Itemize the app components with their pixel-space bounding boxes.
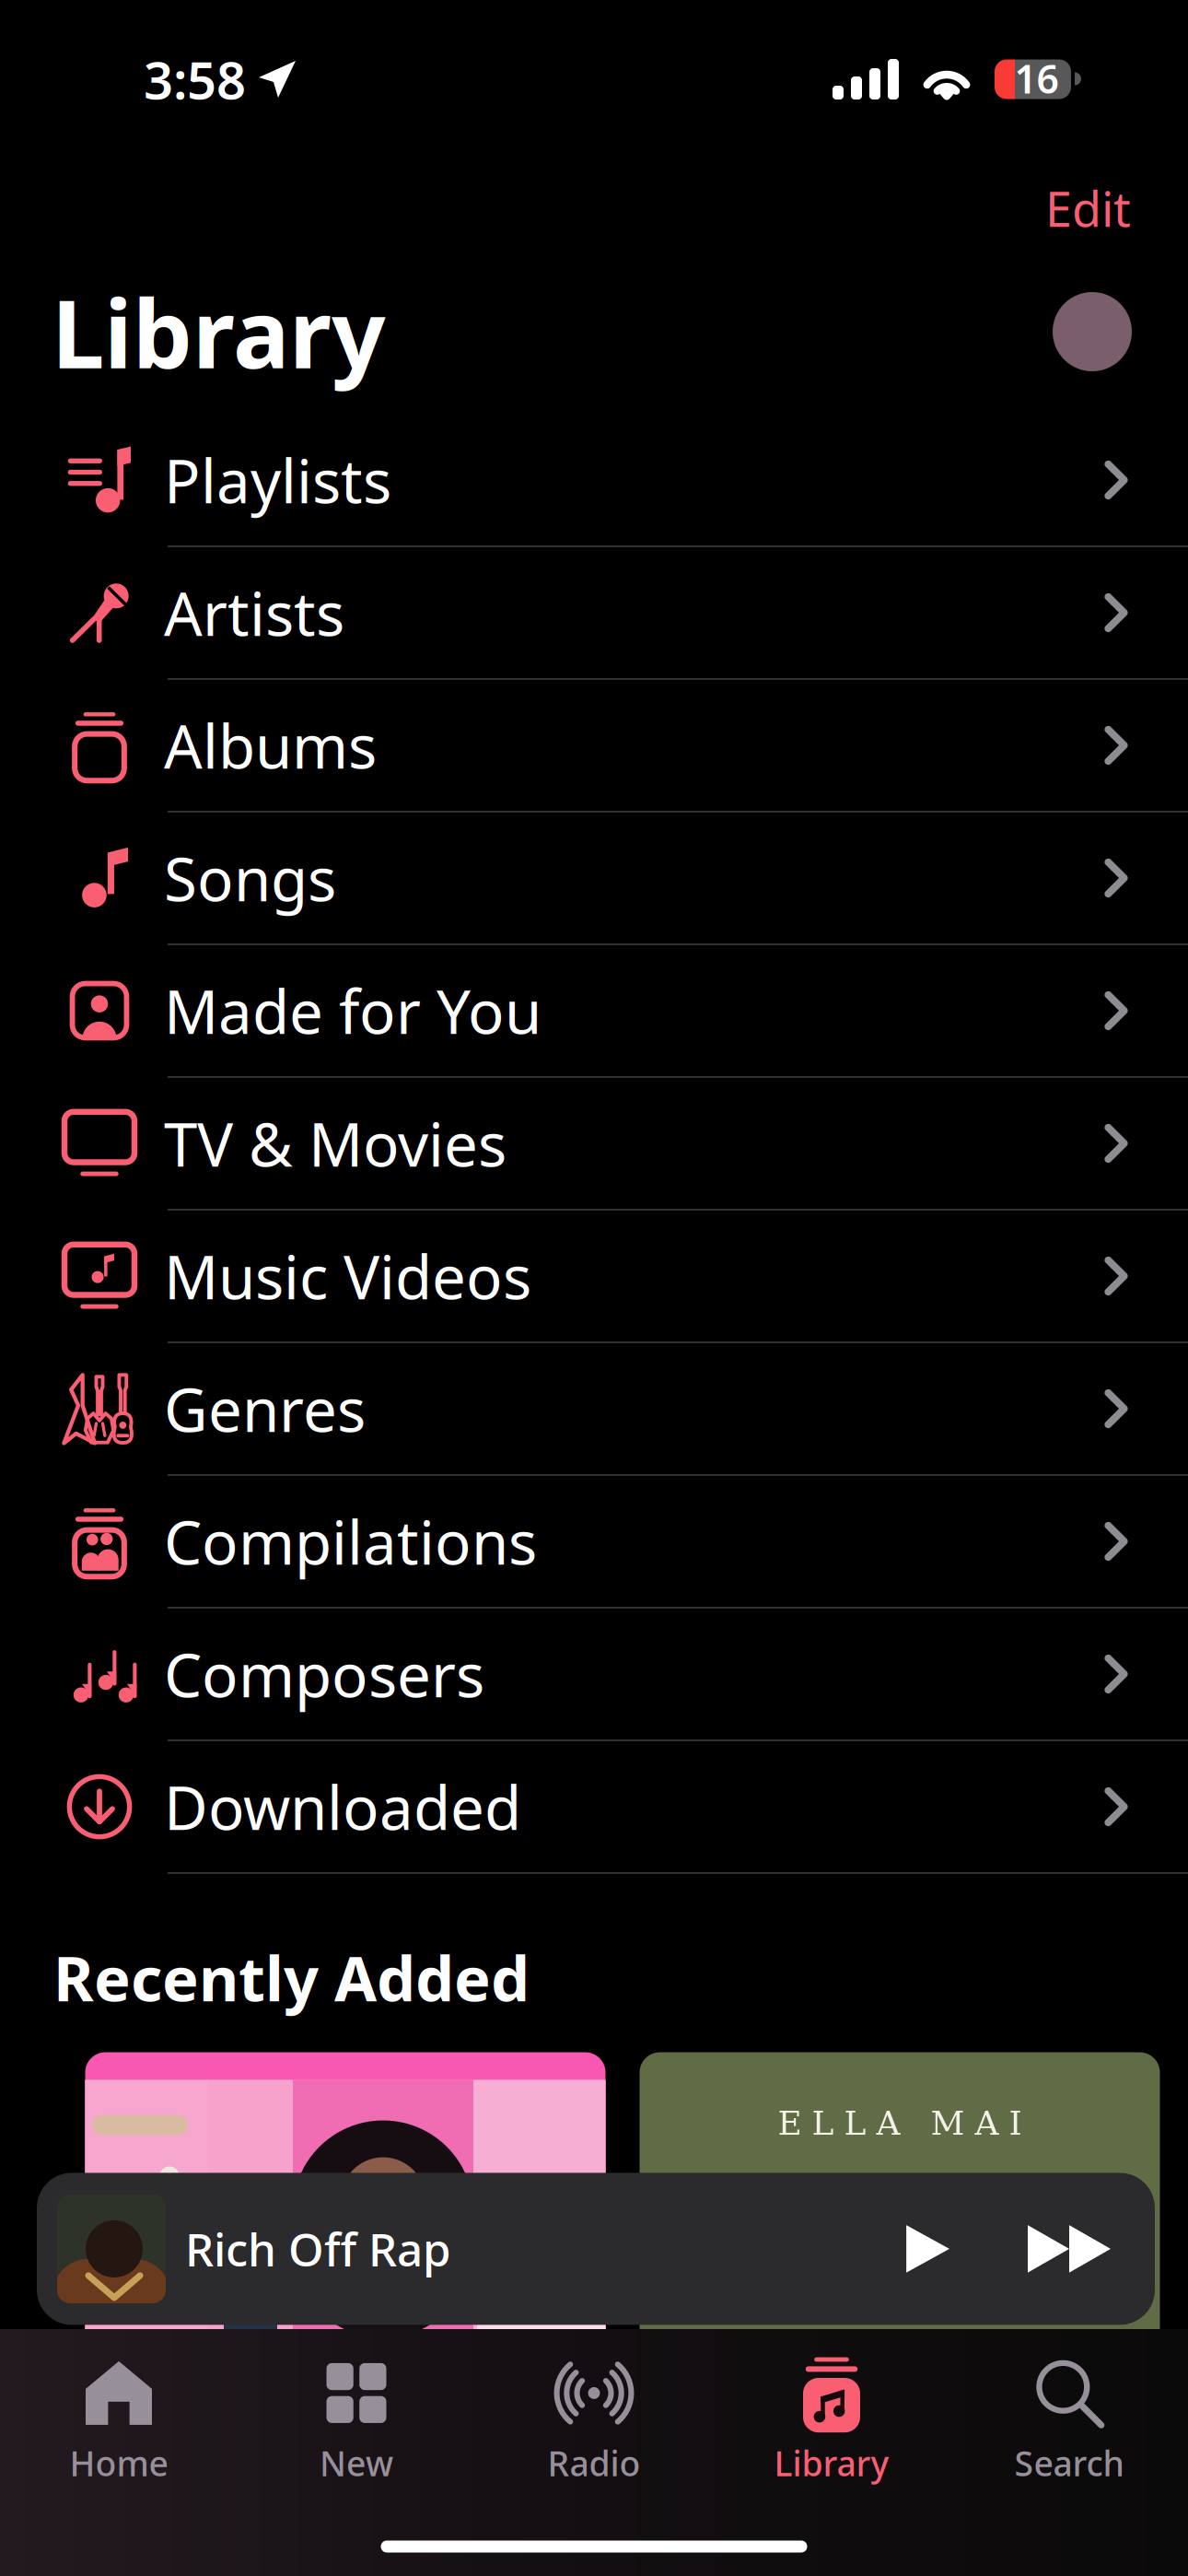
staticText: New — [320, 2440, 393, 2486]
button[interactable]: Artists — [0, 547, 1188, 680]
button[interactable]: Play — [865, 2223, 990, 2275]
staticText: Radio — [547, 2440, 641, 2486]
staticText: Edit — [1045, 176, 1131, 240]
button[interactable]: Downloaded — [0, 1741, 1188, 1874]
button[interactable]: Songs — [0, 813, 1188, 945]
staticText: Songs — [164, 838, 336, 918]
staticText: Recently Added — [53, 1937, 530, 2018]
button[interactable]: TV & Movies — [0, 1078, 1188, 1211]
staticText: E L L A M A I — [778, 2104, 1022, 2142]
staticText: Library — [52, 269, 386, 394]
staticText: Downloaded — [164, 1767, 521, 1847]
staticText: Library — [774, 2440, 889, 2486]
staticText: Compilations — [164, 1501, 537, 1581]
staticText: Search — [1014, 2440, 1124, 2486]
button[interactable]: Playlists — [0, 415, 1188, 547]
button[interactable]: New — [238, 2325, 475, 2508]
staticText: Playlists — [164, 440, 391, 520]
staticText: Music Videos — [164, 1236, 531, 1316]
staticText: Composers — [164, 1634, 484, 1714]
staticText: 16 — [1014, 52, 1059, 104]
button[interactable]: Compilations — [0, 1476, 1188, 1609]
button[interactable]: Albums — [0, 680, 1188, 813]
staticText: Home — [70, 2440, 168, 2486]
staticText: Made for You — [164, 971, 542, 1051]
button[interactable]: Genres — [0, 1343, 1188, 1476]
staticText: Artists — [164, 573, 344, 653]
button[interactable]: Search — [950, 2325, 1188, 2508]
button[interactable]: Edit — [1023, 167, 1153, 249]
button[interactable]: Library — [713, 2325, 950, 2508]
button[interactable]: Home — [0, 2325, 238, 2508]
staticText: 3:58 — [144, 45, 246, 114]
staticText: Rich Off Rap — [185, 2219, 451, 2279]
button[interactable]: Made for You — [0, 945, 1188, 1078]
staticText: Genres — [164, 1369, 366, 1449]
staticText: TV & Movies — [164, 1103, 507, 1183]
button[interactable]: Radio — [475, 2325, 713, 2508]
button[interactable]: Composers — [0, 1609, 1188, 1741]
button[interactable]: Account — [1053, 292, 1188, 371]
button[interactable]: Music Videos — [0, 1211, 1188, 1343]
staticText: Albums — [164, 705, 377, 785]
button[interactable]: Next track — [990, 2223, 1155, 2275]
